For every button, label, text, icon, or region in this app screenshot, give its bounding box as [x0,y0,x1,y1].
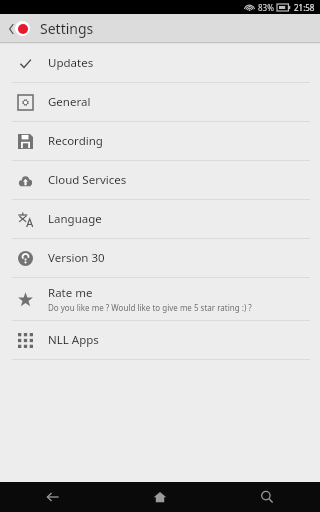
button[interactable]: Version 30 [0,239,320,278]
button[interactable]: General [0,83,320,122]
staticText: NLL Apps [48,332,99,348]
button[interactable]: Search [213,482,320,512]
button[interactable]: Rate me [0,278,320,321]
staticText: Cloud Services [48,172,127,188]
staticText: Version 30 [48,250,105,266]
staticText: Recording [48,133,103,149]
button[interactable]: Recording [0,122,320,161]
button[interactable]: NLL Apps [0,321,320,360]
staticText: 21:58 [294,2,315,13]
button[interactable]: Cloud Services [0,161,320,200]
button[interactable]: Updates [0,44,320,83]
staticText: 83% [258,2,274,13]
button[interactable]: Language [0,200,320,239]
button[interactable]: Home [106,482,213,512]
button[interactable]: Navigate up [6,15,32,41]
staticText: Do you like me ? Would like to give me 5… [48,302,252,313]
staticText: Rate me [48,285,93,301]
staticText: Settings [40,19,94,38]
staticText: Updates [48,55,94,71]
button[interactable]: Back [0,482,106,512]
staticText: General [48,94,91,110]
staticText: Language [48,211,102,227]
